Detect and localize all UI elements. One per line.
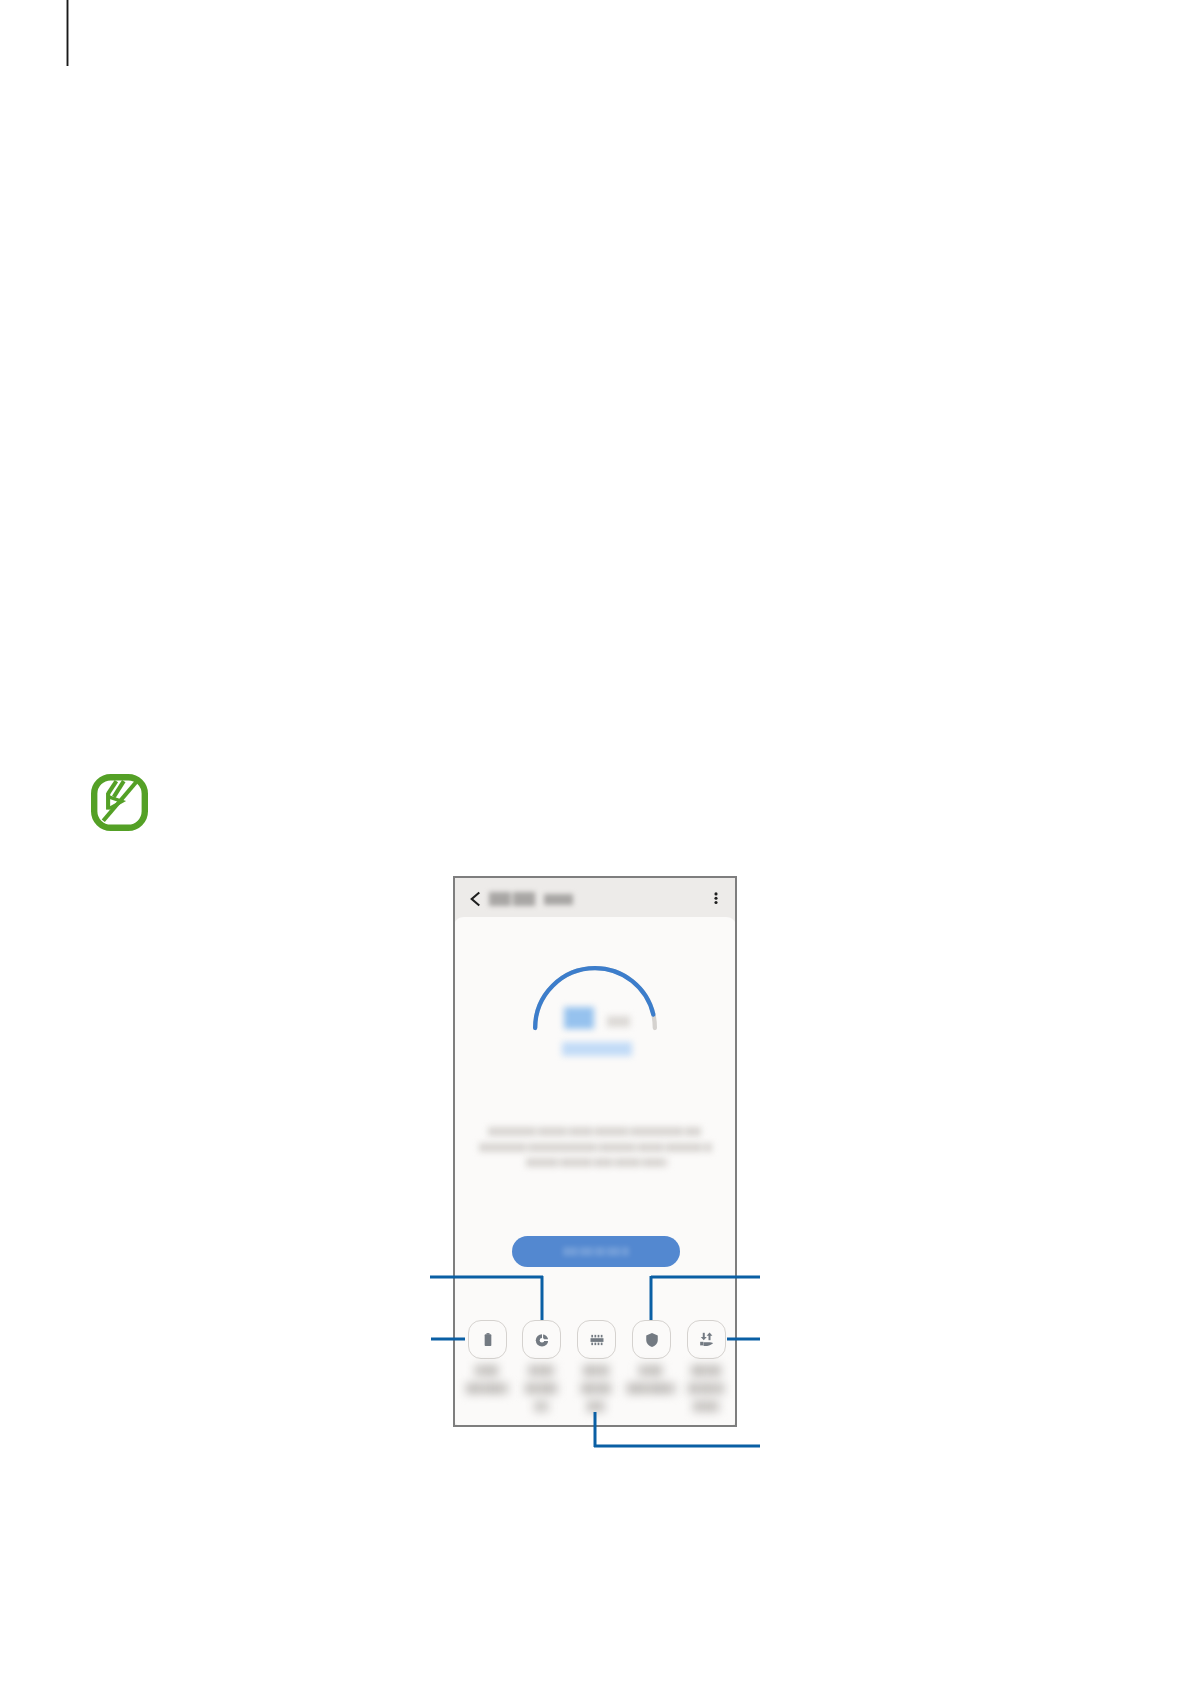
button[interactable]: More options — [704, 887, 728, 911]
button[interactable]: Battery — [458, 1320, 516, 1398]
button[interactable]: Storage — [512, 1320, 570, 1416]
button[interactable]: Optimise now — [512, 1236, 680, 1267]
button[interactable]: Data usage — [677, 1320, 735, 1416]
button[interactable]: Device protection — [622, 1320, 680, 1398]
button[interactable]: Back — [463, 887, 487, 911]
button[interactable]: Memory — [567, 1320, 625, 1416]
